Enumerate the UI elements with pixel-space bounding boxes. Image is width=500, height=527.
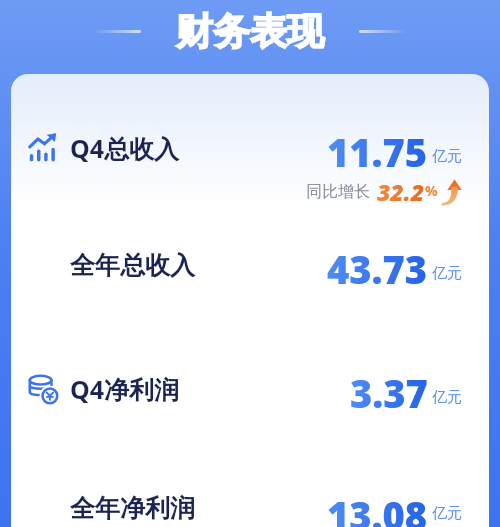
staticText: 亿元 (432, 388, 462, 407)
staticText: % (425, 181, 438, 200)
staticText: 财务表现 (176, 8, 324, 55)
other: Revenue chart (28, 133, 58, 163)
staticText: Q4净利润 (70, 372, 180, 406)
staticText: 亿元 (432, 264, 462, 283)
button[interactable]: Net profit coins (11, 367, 489, 411)
staticText: 43.73 (327, 243, 428, 287)
button[interactable]: 全年总收入 (11, 243, 489, 287)
button[interactable]: Revenue chart (11, 126, 489, 170)
staticText: 全年总收入 (70, 250, 195, 281)
staticText: 同比增长 (306, 182, 370, 202)
staticText: 3.37 (350, 367, 428, 411)
staticText: 亿元 (432, 147, 462, 166)
staticText: 13.08 (327, 489, 428, 527)
other: Net profit coins (28, 374, 58, 404)
staticText: 全年净利润 (70, 493, 195, 524)
staticText: Q4总收入 (70, 131, 180, 165)
staticText: 32.2 (377, 176, 425, 207)
staticText: 亿元 (432, 504, 462, 523)
button[interactable]: 全年净利润 (11, 489, 489, 527)
staticText: 11.75 (327, 126, 428, 170)
